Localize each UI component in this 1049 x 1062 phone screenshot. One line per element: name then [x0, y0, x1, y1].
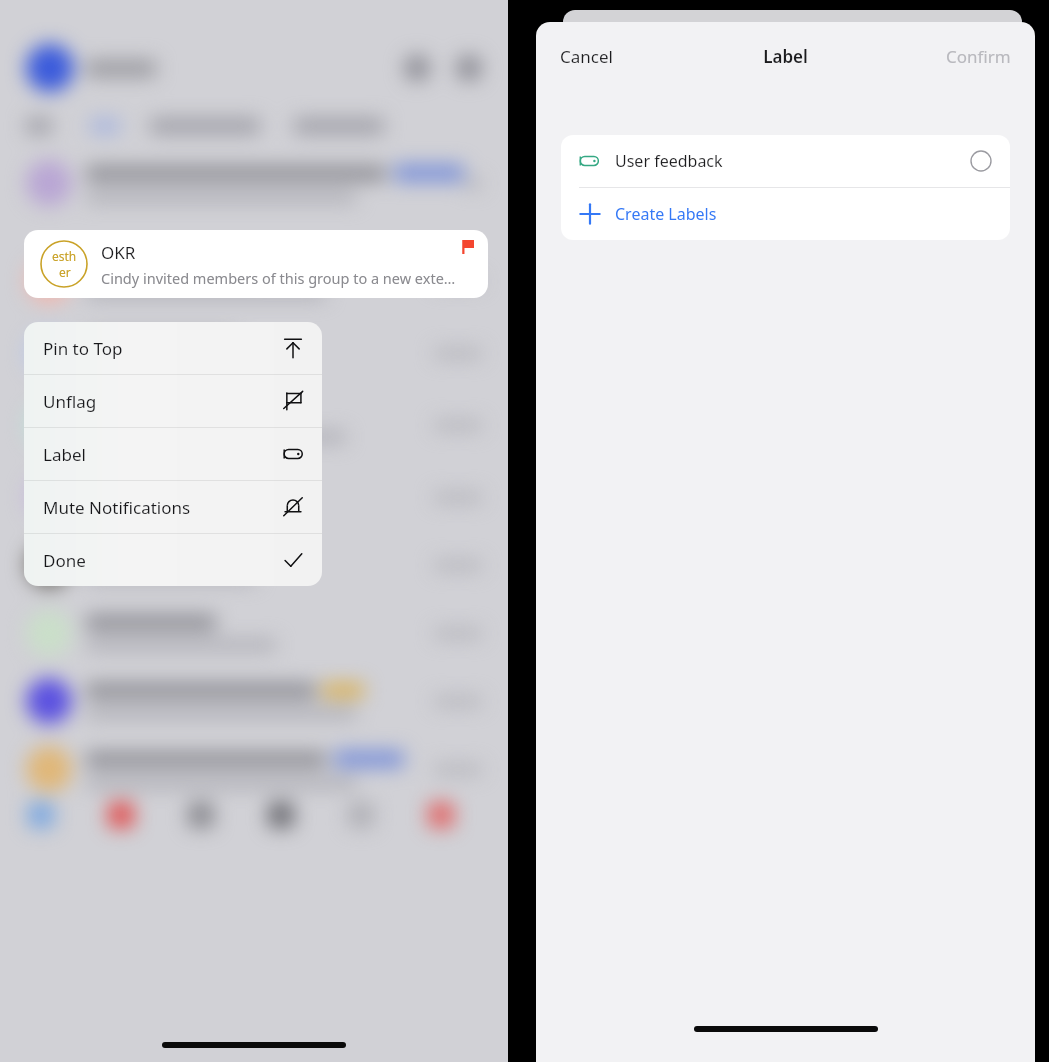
staticText: Confirm	[946, 45, 1011, 68]
staticText: Create Labels	[615, 203, 717, 225]
button[interactable]: Create Labels	[561, 188, 1010, 240]
button[interactable]: Label tag	[561, 135, 1010, 187]
staticText: Cancel	[560, 45, 613, 68]
button[interactable]: Mute Notifications	[24, 481, 322, 533]
staticText: OKR	[101, 241, 136, 264]
button[interactable]: Unflag	[24, 375, 322, 427]
staticText: esth	[52, 248, 77, 264]
button[interactable]: Confirm	[932, 39, 1025, 74]
button[interactable]: Label	[24, 428, 322, 480]
staticText: Label	[43, 443, 86, 466]
button[interactable]: Done	[24, 534, 322, 586]
button[interactable]: esth	[24, 230, 488, 298]
staticText: Cindy invited members of this group to a…	[101, 268, 456, 288]
staticText: Mute Notifications	[43, 496, 191, 519]
staticText: Done	[43, 549, 86, 572]
staticText: er	[59, 264, 71, 280]
staticText: User feedback	[615, 150, 723, 172]
button[interactable]: Cancel	[546, 39, 627, 74]
button[interactable]: Pin to Top	[24, 322, 322, 374]
staticText: Unflag	[43, 390, 97, 413]
staticText: Label	[763, 45, 808, 68]
staticText: Pin to Top	[43, 337, 123, 360]
other: Label tag	[579, 150, 601, 172]
